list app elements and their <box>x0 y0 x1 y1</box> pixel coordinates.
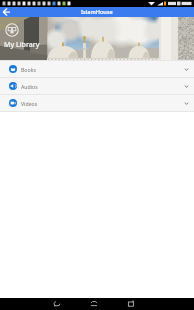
button[interactable]: Back <box>50 298 64 310</box>
staticText: Videos <box>21 100 38 107</box>
staticText: Audios <box>21 83 38 90</box>
staticText: IslamHouse <box>81 8 113 16</box>
button[interactable]: My Library <box>5 23 19 37</box>
button[interactable]: Back <box>0 7 14 17</box>
button[interactable]: Videos <box>0 95 194 111</box>
button[interactable]: Audios <box>0 78 194 94</box>
button[interactable]: Recent apps <box>124 298 138 310</box>
staticText: My Library <box>4 40 40 50</box>
button[interactable]: Books <box>0 61 194 77</box>
button[interactable]: Home <box>87 298 101 310</box>
staticText: Books <box>21 66 36 73</box>
